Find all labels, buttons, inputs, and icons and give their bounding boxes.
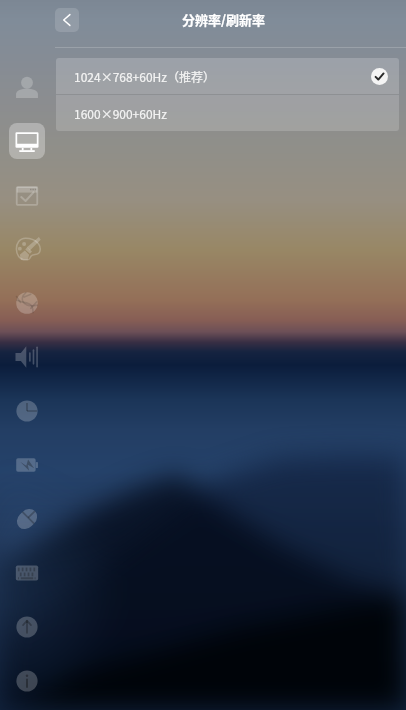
button[interactable]: 1024×768+60Hz（推荐） [56, 58, 399, 94]
staticText: 1024×768+60Hz（推荐） [74, 68, 216, 85]
button[interactable]: Power [9, 447, 45, 483]
button[interactable]: Back [55, 8, 79, 32]
button[interactable]: Account [9, 70, 45, 106]
button[interactable]: 1600×900+60Hz [56, 95, 399, 131]
button[interactable]: Keyboard [9, 555, 45, 591]
staticText: 1600×900+60Hz [74, 105, 168, 122]
button[interactable]: Display [9, 123, 45, 159]
button[interactable]: Update [9, 609, 45, 645]
button[interactable]: Personalisation [9, 231, 45, 267]
button[interactable]: Sound [9, 339, 45, 375]
button[interactable]: Network [9, 285, 45, 321]
staticText: 分辨率/刷新率 [182, 10, 266, 29]
button[interactable]: About [9, 663, 45, 699]
button[interactable]: Date and time [9, 393, 45, 429]
button[interactable]: Default applications [9, 178, 45, 214]
button[interactable]: Mouse [9, 501, 45, 537]
